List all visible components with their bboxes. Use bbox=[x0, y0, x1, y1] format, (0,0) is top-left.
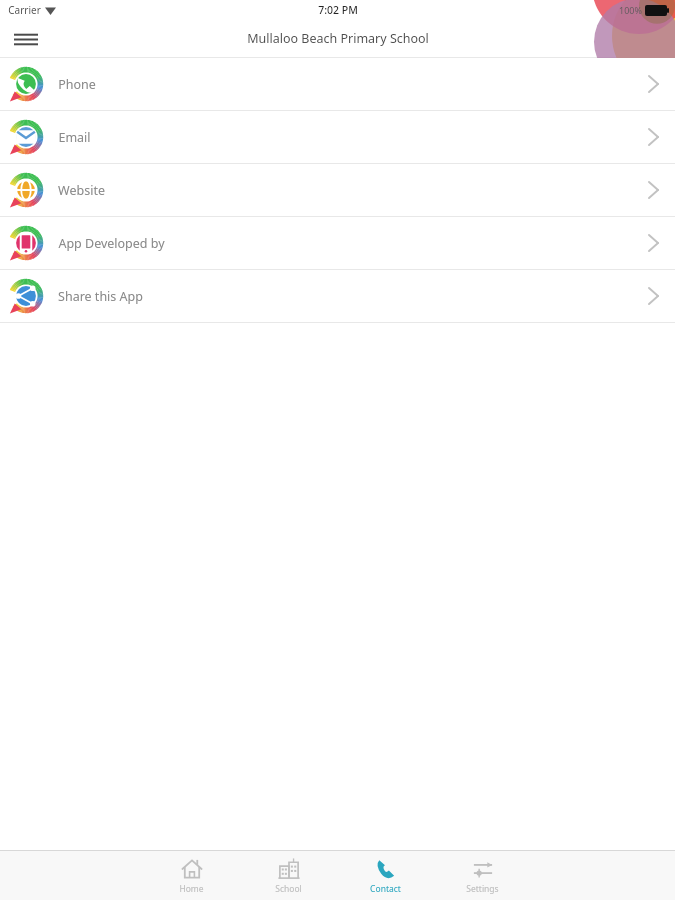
staticText: 7:02 PM bbox=[318, 3, 358, 17]
staticText: Phone bbox=[58, 76, 96, 93]
button[interactable]: Settings bbox=[434, 851, 531, 900]
staticText: Share this App bbox=[58, 288, 143, 305]
button[interactable]: Home bbox=[143, 851, 240, 900]
staticText: Settings bbox=[466, 883, 499, 895]
button[interactable]: Contact bbox=[337, 851, 434, 900]
button[interactable]: School bbox=[240, 851, 337, 900]
staticText: App Developed by bbox=[58, 235, 165, 252]
button[interactable]: App Developed by bbox=[0, 217, 675, 269]
staticText: Email bbox=[58, 129, 91, 146]
staticText: Carrier bbox=[8, 3, 41, 17]
staticText: Website bbox=[58, 182, 105, 199]
staticText: Contact bbox=[370, 883, 401, 895]
button[interactable]: Website bbox=[0, 164, 675, 216]
button[interactable]: Menu bbox=[8, 23, 44, 55]
button[interactable]: Phone bbox=[0, 58, 675, 110]
button[interactable]: Share this App bbox=[0, 270, 675, 322]
button[interactable]: Email bbox=[0, 111, 675, 163]
staticText: 100% bbox=[619, 4, 642, 16]
staticText: Home bbox=[179, 883, 204, 895]
staticText: School bbox=[275, 883, 302, 895]
staticText: Mullaloo Beach Primary School bbox=[247, 30, 429, 47]
